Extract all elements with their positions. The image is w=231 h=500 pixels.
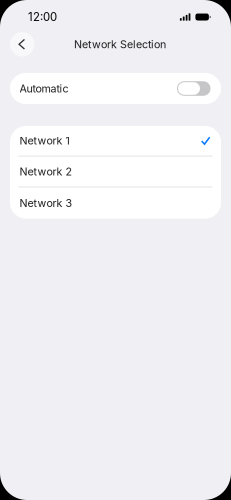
staticText: Network Selection xyxy=(74,38,166,51)
staticText: Network 1 xyxy=(19,134,69,147)
button[interactable]: Network 3 xyxy=(10,188,221,219)
staticText: Network 2 xyxy=(19,165,72,178)
button[interactable]: Automatic network selection xyxy=(177,81,210,96)
button[interactable]: Network 1 xyxy=(10,126,221,155)
staticText: Network 3 xyxy=(19,197,72,210)
staticText: 12:00 xyxy=(28,10,57,24)
staticText: Automatic xyxy=(19,82,68,95)
button[interactable]: Network 2 xyxy=(10,157,221,186)
button[interactable]: Back xyxy=(10,32,34,56)
